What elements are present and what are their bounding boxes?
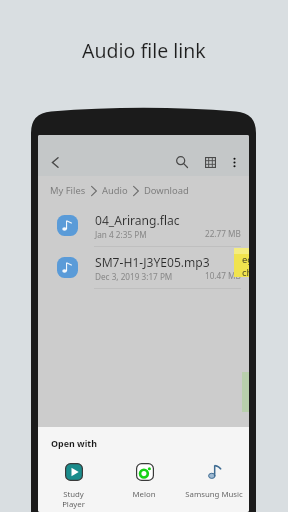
- button[interactable]: 04_Arirang.flac: [38, 205, 249, 247]
- staticText: Study Player: [62, 489, 85, 509]
- button[interactable]: SM7-H1-J3YE05.mp3: [38, 247, 249, 289]
- staticText: Open with: [51, 437, 97, 449]
- staticText: Dec 3, 2019 3:17 PM: [95, 271, 173, 282]
- button[interactable]: Search: [170, 150, 194, 174]
- staticText: Download: [144, 184, 189, 197]
- staticText: Jan 4 2:35 PM: [95, 229, 147, 240]
- staticText: 04_Arirang.flac: [95, 212, 180, 228]
- button[interactable]: Melon: [109, 462, 179, 500]
- staticText: Samsung Music: [185, 489, 243, 500]
- button[interactable]: More options: [222, 150, 246, 174]
- button[interactable]: Back: [43, 150, 67, 174]
- staticText: Melon: [132, 489, 156, 500]
- button[interactable]: Study Player: [38, 462, 109, 509]
- staticText: cho: [242, 266, 249, 277]
- staticText: SM7-H1-J3YE05.mp3: [95, 254, 210, 270]
- staticText: My Files: [50, 184, 86, 197]
- staticText: Audio: [102, 184, 128, 197]
- button[interactable]: Samsung Music: [179, 462, 249, 500]
- staticText: 10.47 MB: [205, 270, 241, 281]
- staticText: egg: [242, 253, 249, 266]
- button[interactable]: Grid view: [198, 150, 222, 174]
- staticText: Audio file link: [82, 37, 206, 64]
- staticText: 22.77 MB: [205, 228, 241, 239]
